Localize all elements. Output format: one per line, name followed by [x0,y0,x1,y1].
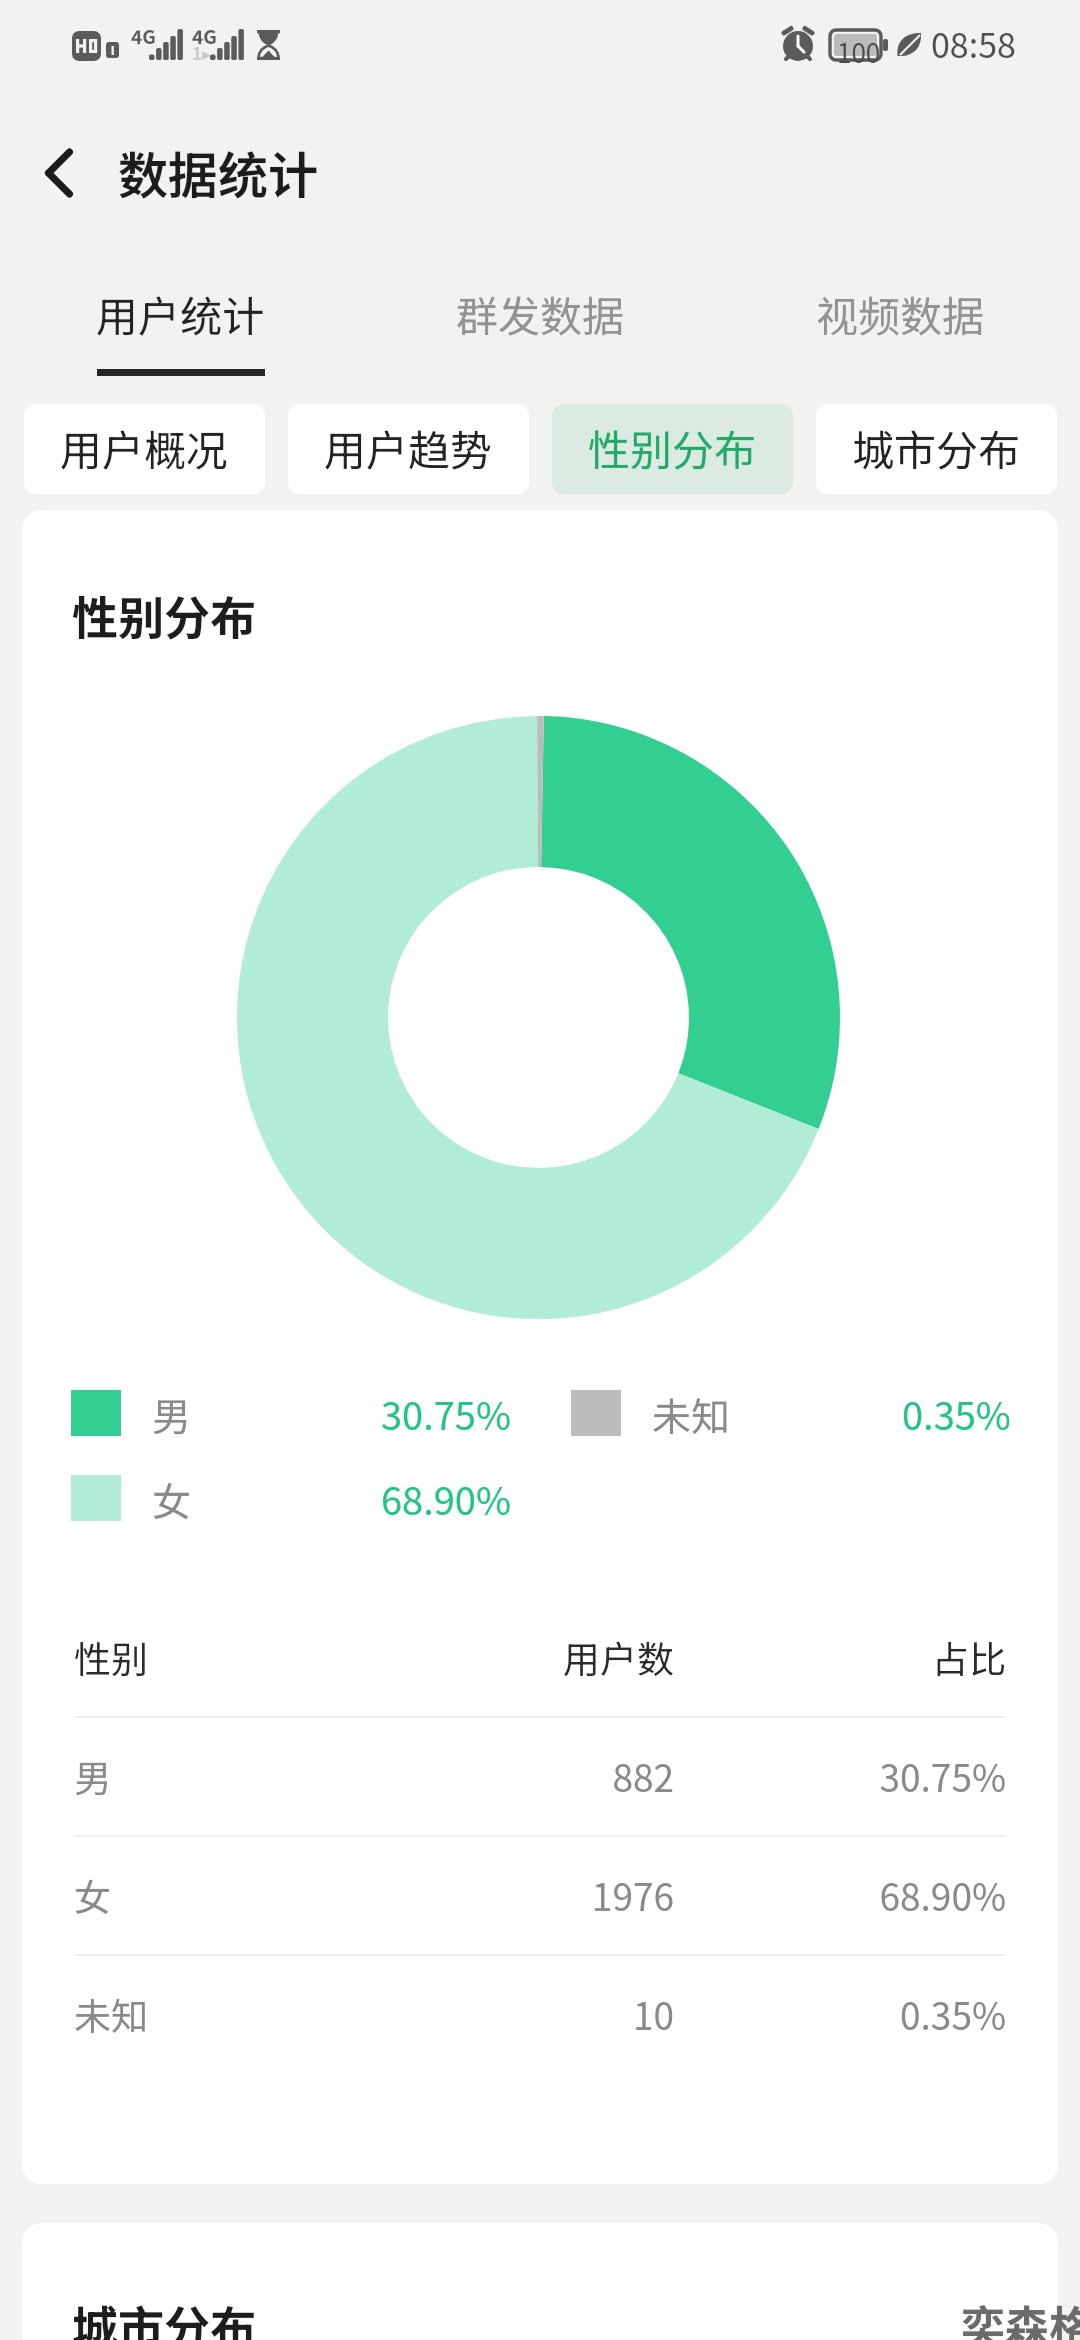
button[interactable]: 用户概况 [24,404,265,494]
staticText: 性别分布 [72,582,256,649]
staticText: 4G [192,22,217,50]
staticText: 100 [837,33,881,71]
button[interactable]: 群发数据 [360,260,720,390]
button[interactable]: Back [0,120,118,220]
staticText: 未知 [652,1386,731,1442]
staticText: 68.90% [674,1868,1006,1922]
button[interactable]: 城市分布 [816,404,1057,494]
staticText: 女 [152,1471,192,1527]
staticText: 用户概况 [60,417,229,478]
staticText: 城市分布 [72,2292,256,2340]
staticText: 男 [74,1749,354,1803]
staticText: 男 [152,1386,192,1442]
button[interactable]: 用户统计 [0,260,360,390]
staticText: 占比 [674,1630,1006,1684]
staticText: 4G [131,22,156,50]
staticText: 群发数据 [456,283,625,344]
staticText: 用户趋势 [324,417,493,478]
staticText: 女 [74,1868,354,1922]
staticText: 68.90% [381,1471,511,1526]
staticText: 0.35% [674,1987,1006,2041]
staticText: 用户数 [354,1630,674,1684]
button[interactable]: 视频数据 [720,260,1080,390]
staticText: 视频数据 [816,283,985,344]
staticText: 0.35% [902,1386,1011,1441]
staticText: 数据统计 [118,136,318,208]
staticText: 30.75% [674,1749,1006,1803]
staticText: 08:58 [931,19,1016,68]
staticText: 用户统计 [96,283,265,344]
staticText: 10 [354,1987,674,2041]
button[interactable]: 性别分布 [552,404,793,494]
staticText: 30.75% [381,1386,511,1441]
staticText: 奕森格 [961,2292,1080,2340]
staticText: 城市分布 [852,417,1021,478]
staticText: 1976 [354,1868,674,1922]
staticText: 未知 [74,1987,354,2041]
button[interactable]: 用户趋势 [288,404,529,494]
staticText: 1▸ [192,40,211,65]
staticText: 882 [354,1749,674,1803]
staticText: 性别 [74,1630,354,1684]
staticText: 性别分布 [588,417,757,478]
